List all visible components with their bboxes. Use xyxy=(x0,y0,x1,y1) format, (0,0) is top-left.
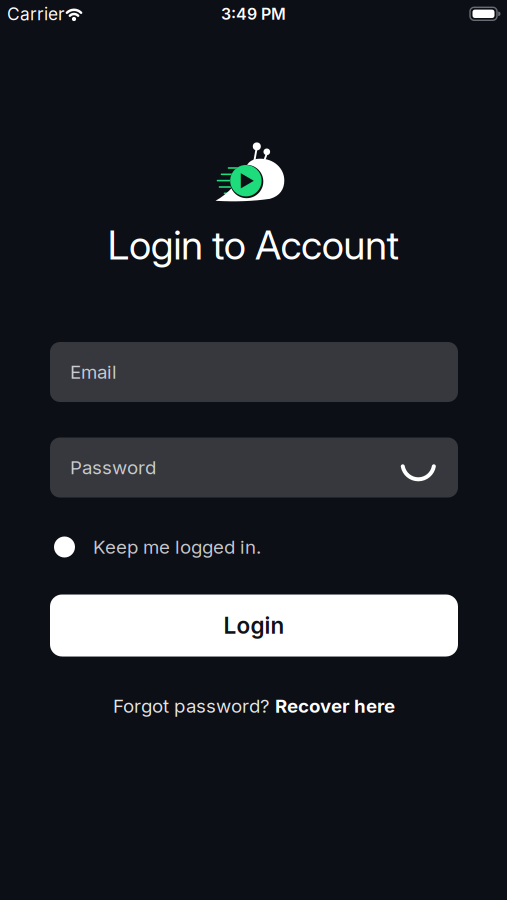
button[interactable]: Password xyxy=(50,437,458,497)
button[interactable] xyxy=(401,457,435,485)
button[interactable]: Keep me logged in. xyxy=(0,536,507,558)
staticText: Login xyxy=(223,612,284,639)
staticText: Carrier xyxy=(7,4,65,24)
staticText: Forgot password? xyxy=(113,695,270,717)
staticText: Email xyxy=(70,361,117,383)
staticText: 3:49 PM xyxy=(221,5,286,23)
staticText: Password xyxy=(70,456,156,478)
staticText: Keep me logged in. xyxy=(93,536,261,558)
button[interactable]: Login xyxy=(50,594,458,656)
button[interactable]: Email xyxy=(50,342,458,402)
staticText: Recover here xyxy=(275,695,395,717)
staticText: Login to Account xyxy=(107,221,399,269)
button[interactable]: Forgot password? xyxy=(113,695,395,717)
